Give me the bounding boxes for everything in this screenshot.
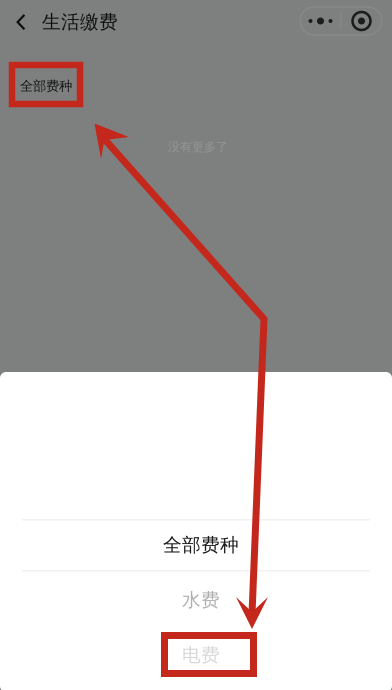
- staticText: 没有更多了: [168, 140, 228, 154]
- button[interactable]: 全部费种: [5, 519, 392, 571]
- staticText: 全部费种: [20, 78, 72, 94]
- staticText: 全部费种: [163, 533, 239, 556]
- button[interactable]: 水费: [5, 574, 392, 626]
- staticText: 水费: [182, 588, 220, 611]
- button[interactable]: More: [300, 7, 382, 35]
- button[interactable]: 全部费种: [20, 77, 92, 95]
- staticText: 电费: [182, 643, 220, 666]
- staticText: 生活缴费: [42, 10, 118, 33]
- button[interactable]: 生活缴费: [0, 0, 170, 44]
- button[interactable]: 电费: [5, 629, 392, 681]
